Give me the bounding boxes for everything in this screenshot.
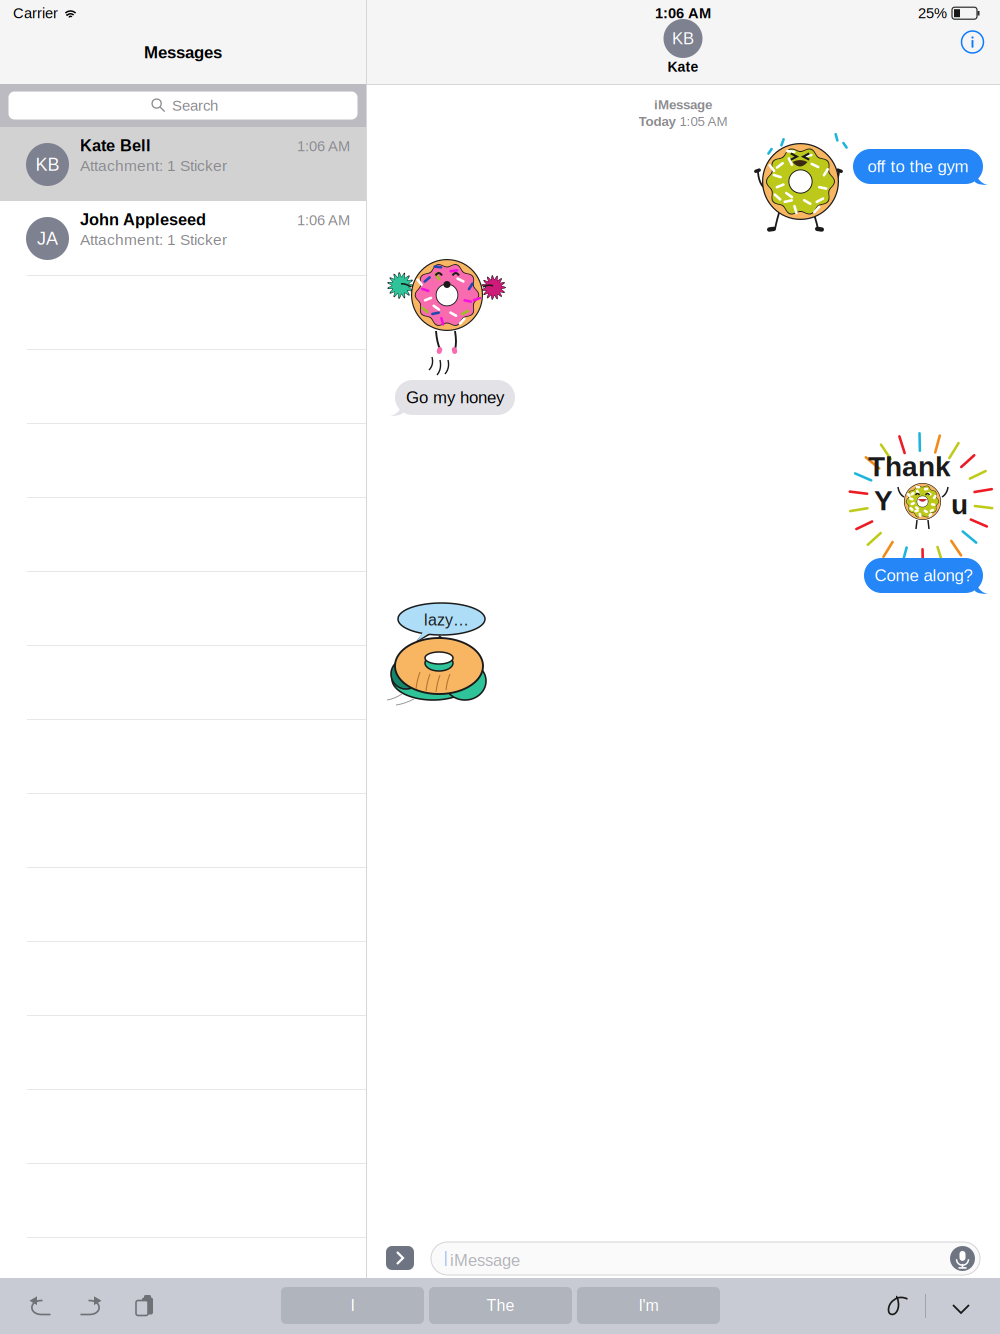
staticText: Today [638, 114, 675, 129]
button[interactable]: Undo [21, 1288, 59, 1324]
staticText: John Appleseed [80, 210, 206, 229]
staticText: Y [874, 485, 893, 516]
staticText: Go my honey [406, 388, 504, 407]
button[interactable]: Handwriting [878, 1288, 916, 1324]
staticText: 25% [918, 5, 947, 21]
button[interactable]: Hide keyboard [942, 1291, 980, 1327]
button[interactable]: Apps [386, 1246, 414, 1270]
staticText: JA [37, 228, 58, 248]
button[interactable]: I'm [577, 1287, 720, 1324]
staticText: Attachment: 1 Sticker [80, 231, 227, 248]
staticText: 1:06 AM [297, 212, 350, 228]
staticText: Kate [667, 59, 698, 75]
button[interactable]: JA [0, 201, 366, 275]
button[interactable]: Redo [72, 1288, 110, 1324]
staticText: Thank [868, 451, 951, 482]
staticText: Search [172, 97, 218, 114]
staticText: KB [672, 29, 694, 48]
staticText: Attachment: 1 Sticker [80, 157, 227, 174]
staticText: iMessage [450, 1251, 520, 1269]
staticText: The [486, 1297, 514, 1314]
button[interactable]: KB [0, 127, 366, 201]
button[interactable]: Details [952, 22, 992, 62]
staticText: Carrier [13, 5, 58, 21]
button[interactable]: Paste [126, 1287, 164, 1323]
staticText: Kate Bell [80, 136, 151, 155]
staticText: I'm [638, 1297, 658, 1314]
staticText: iMessage [654, 97, 712, 112]
staticText: 1:05 AM [679, 114, 727, 129]
staticText: KB [35, 154, 59, 174]
staticText: 1:06 AM [655, 5, 711, 21]
staticText: lazy… [424, 611, 469, 629]
staticText: Messages [144, 43, 222, 62]
staticText: u [951, 489, 968, 520]
staticText: I [350, 1297, 354, 1314]
staticText: Come along? [874, 566, 972, 585]
button[interactable]: I [281, 1287, 424, 1324]
button[interactable]: The [429, 1287, 572, 1324]
button[interactable]: KB [663, 19, 702, 75]
staticText: off to the gym [867, 157, 968, 176]
staticText: 1:06 AM [297, 138, 350, 154]
